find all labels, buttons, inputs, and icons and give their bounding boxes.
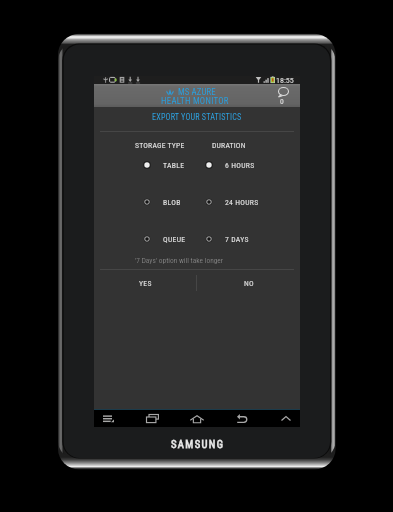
staticText: BLOB [163, 198, 181, 207]
staticText: '7 Days' option will take longer [135, 256, 224, 265]
staticText: SAMSUNG [171, 438, 225, 450]
button[interactable]: TABLE [142, 159, 205, 171]
staticText: 7 DAYS [225, 235, 249, 244]
button[interactable]: Hide keyboard [267, 410, 305, 427]
staticText: HEALTH MONITOR [161, 96, 229, 106]
staticText: QUEUE [163, 235, 186, 244]
button[interactable]: Messages [274, 86, 298, 107]
staticText: YES [139, 279, 152, 288]
staticText: TABLE [163, 161, 185, 170]
button[interactable]: Back [223, 410, 261, 427]
button[interactable]: YES [94, 270, 196, 296]
staticText: 6 HOURS [225, 161, 255, 170]
button[interactable]: 24 HOURS [204, 196, 267, 208]
staticText: MS AZURE [178, 87, 216, 97]
staticText: 0 [280, 97, 284, 106]
button[interactable]: Menu [89, 410, 127, 427]
button[interactable]: Recent apps [133, 410, 171, 427]
staticText: DURATION [212, 141, 246, 150]
button[interactable]: BLOB [142, 196, 205, 208]
button[interactable]: EXPORT YOUR STATISTICS [94, 107, 300, 126]
button[interactable]: QUEUE [142, 233, 205, 245]
staticText: NO [244, 279, 254, 288]
button[interactable]: 7 DAYS [204, 233, 267, 245]
button[interactable]: MS AZURE [94, 84, 300, 107]
button[interactable]: 6 HOURS [204, 159, 267, 171]
button[interactable]: NO [197, 270, 300, 296]
staticText: 24 HOURS [225, 198, 259, 207]
staticText: 18:55 [276, 76, 294, 84]
staticText: EXPORT YOUR STATISTICS [152, 112, 242, 122]
staticText: STORAGE TYPE [135, 141, 185, 150]
button[interactable]: Home [178, 410, 216, 427]
